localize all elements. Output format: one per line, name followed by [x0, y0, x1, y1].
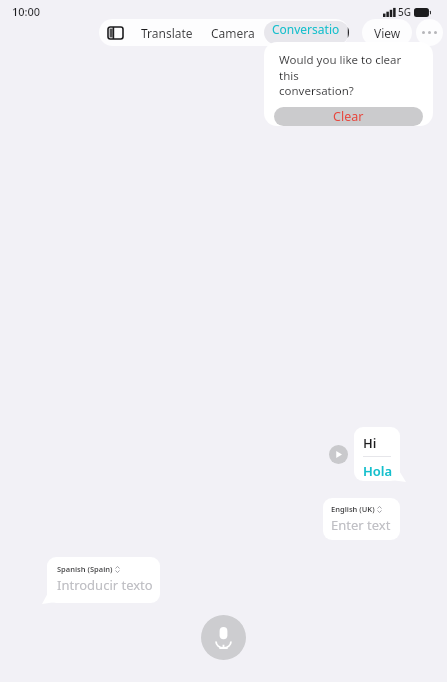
staticText: Enter text	[331, 516, 391, 534]
staticText: Would you like to clear this conversatio…	[279, 52, 418, 98]
staticText: 10:00	[12, 4, 41, 19]
button[interactable]: Conversation	[264, 21, 349, 44]
staticText: Translate	[141, 25, 193, 41]
button[interactable]: Clear	[274, 107, 423, 126]
staticText: English (UK)	[331, 504, 375, 514]
staticText: Conversation	[272, 21, 341, 44]
button[interactable]: Record with microphone	[201, 615, 246, 660]
button[interactable]: Camera	[202, 19, 264, 46]
staticText: 5G	[398, 5, 411, 19]
button[interactable]: English (UK)	[323, 498, 400, 540]
staticText: View	[374, 25, 401, 41]
button[interactable]: View	[362, 19, 412, 46]
staticText: Hi	[363, 434, 377, 452]
staticText: Hola	[363, 462, 393, 480]
staticText: Clear	[333, 108, 364, 125]
button[interactable]: Play translation	[329, 445, 348, 464]
button[interactable]: More options	[416, 19, 443, 46]
button[interactable]: Translate	[132, 19, 202, 46]
staticText: Spanish (Spain)	[57, 564, 113, 574]
staticText: Introducir texto	[57, 576, 153, 594]
staticText: Camera	[211, 25, 255, 41]
button[interactable]: Sidebar	[99, 19, 132, 46]
